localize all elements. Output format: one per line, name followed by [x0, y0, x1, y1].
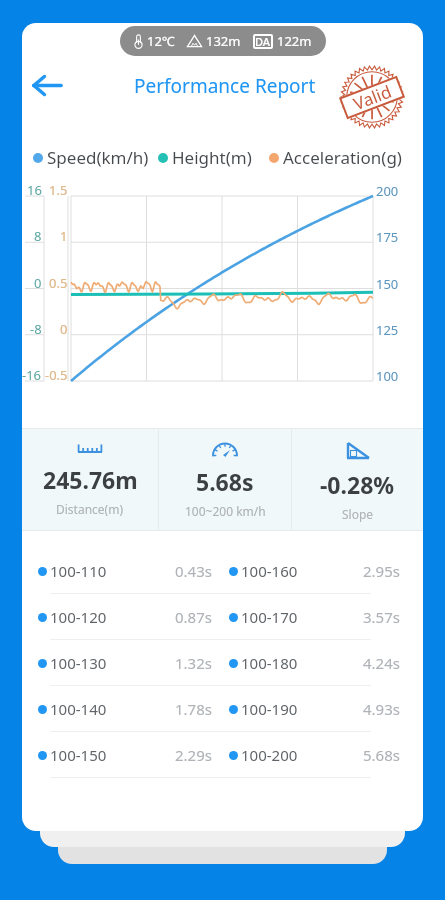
button[interactable]: 5.68s — [159, 428, 291, 531]
button[interactable]: 100-200 — [213, 732, 423, 778]
staticText: 3.57s — [363, 607, 400, 627]
button[interactable]: 245.76m — [22, 428, 158, 531]
staticText: 4.93s — [363, 699, 400, 719]
staticText: 2.95s — [363, 561, 400, 581]
staticText: 1.32s — [175, 653, 212, 673]
staticText: 12℃ — [147, 32, 175, 50]
staticText: DA — [255, 34, 271, 49]
staticText: Valid — [350, 80, 395, 115]
staticText: 5.68s — [363, 745, 400, 765]
button[interactable]: 100-140 — [22, 686, 213, 732]
staticText: 100-170 — [241, 607, 298, 627]
staticText: Performance Report — [134, 73, 316, 99]
staticText: Distance(m) — [56, 501, 124, 517]
button[interactable]: 100-190 — [213, 686, 423, 732]
staticText: 100-200 — [241, 745, 298, 765]
staticText: Slope — [342, 506, 374, 522]
button[interactable]: 100-170 — [213, 594, 423, 640]
staticText: 100-180 — [241, 653, 298, 673]
staticText: Acceleration(g) — [283, 146, 402, 169]
staticText: 100-110 — [50, 561, 107, 581]
button[interactable]: 100-180 — [213, 640, 423, 686]
button[interactable]: 100-150 — [22, 732, 213, 778]
staticText: 100-130 — [50, 653, 107, 673]
staticText: 5.68s — [196, 466, 254, 497]
button[interactable]: 100-160 — [213, 548, 423, 594]
button[interactable]: 100-110 — [22, 548, 213, 594]
staticText: 4.24s — [363, 653, 400, 673]
staticText: 100-150 — [50, 745, 107, 765]
staticText: 2.29s — [175, 745, 212, 765]
staticText: 0.87s — [175, 607, 212, 627]
staticText: 132m — [206, 32, 241, 50]
staticText: 122m — [277, 32, 312, 50]
button[interactable]: Back — [23, 61, 71, 109]
staticText: 100-190 — [241, 699, 298, 719]
staticText: 100-140 — [50, 699, 107, 719]
staticText: 100-160 — [241, 561, 298, 581]
button[interactable]: 100-130 — [22, 640, 213, 686]
staticText: 1.78s — [175, 699, 212, 719]
button[interactable]: -0.28% — [292, 428, 423, 531]
staticText: 245.76m — [43, 464, 138, 495]
staticText: 100-120 — [50, 607, 107, 627]
button[interactable]: 100-120 — [22, 594, 213, 640]
staticText: 0.43s — [175, 561, 212, 581]
staticText: Speed(km/h) — [47, 146, 149, 169]
button[interactable]: 12℃ — [120, 26, 326, 56]
staticText: Height(m) — [172, 146, 252, 169]
staticText: 100~200 km/h — [185, 503, 266, 519]
staticText: -0.28% — [320, 469, 395, 500]
